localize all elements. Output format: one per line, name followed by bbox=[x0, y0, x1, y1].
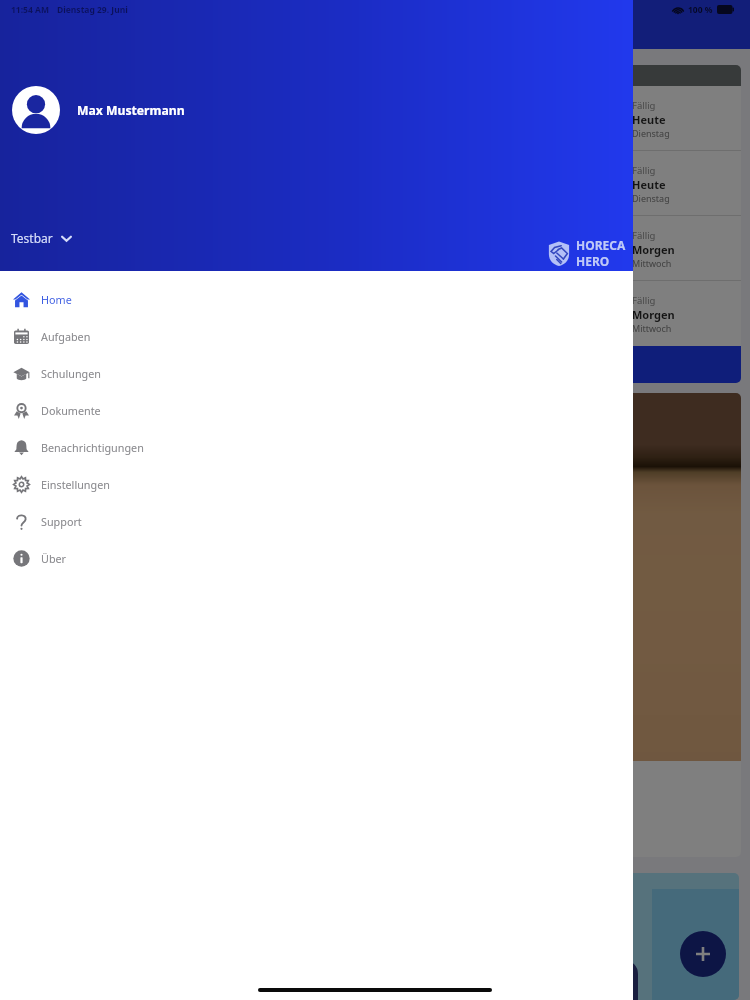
staticText: 11:54 AM bbox=[11, 4, 49, 16]
staticText: 100 % bbox=[688, 4, 713, 16]
staticText: Testbar bbox=[11, 230, 53, 246]
staticText: Benachrichtigungen bbox=[41, 440, 144, 455]
button[interactable]: Aufgabe bbox=[9, 151, 741, 216]
staticText: Aufgabe bbox=[23, 99, 78, 117]
staticText: Mittwoch bbox=[632, 322, 672, 334]
staticText: Aufgaben bbox=[41, 329, 91, 344]
staticText: Home bbox=[41, 292, 72, 307]
staticText: Dienstag 29. Juni bbox=[57, 4, 128, 16]
button[interactable]: Add bbox=[680, 931, 726, 977]
staticText: Morgen bbox=[632, 307, 675, 322]
staticText: Aufgabe bbox=[23, 294, 78, 312]
staticText: Fällig bbox=[632, 164, 656, 177]
button[interactable]: Benachrichtigungen bbox=[0, 429, 633, 466]
button[interactable]: Über bbox=[0, 540, 633, 577]
button[interactable]: Aufgabe bbox=[9, 216, 741, 281]
staticText: Einstellungen bbox=[41, 477, 110, 492]
button[interactable]: Support bbox=[0, 503, 633, 540]
button[interactable]: Einstellungen bbox=[0, 466, 633, 503]
button[interactable]: Schulungen bbox=[0, 355, 633, 392]
staticText: Aufgabe bbox=[23, 229, 78, 247]
staticText: Heute bbox=[632, 177, 666, 192]
staticText: Morgen bbox=[632, 242, 675, 257]
staticText: Heute bbox=[632, 112, 666, 127]
staticText: Dokumente bbox=[41, 403, 101, 418]
button[interactable]: Dokumente bbox=[0, 392, 633, 429]
staticText: Dienstag bbox=[632, 192, 670, 204]
staticText: Fällig bbox=[632, 99, 656, 112]
staticText: Zugewiesen an Max bbox=[23, 250, 117, 264]
staticText: HORECA bbox=[576, 237, 626, 253]
staticText: Mittwoch bbox=[632, 257, 672, 269]
button[interactable]: Aufgaben bbox=[0, 318, 633, 355]
button[interactable]: Testbar bbox=[11, 230, 73, 246]
staticText: Max Mustermann bbox=[77, 102, 185, 119]
button[interactable]: Aufgabe bbox=[9, 281, 741, 346]
staticText: Support bbox=[41, 514, 82, 529]
staticText: Fällig bbox=[632, 294, 656, 307]
staticText: Dienstag bbox=[632, 127, 670, 139]
staticText: HERO bbox=[576, 253, 610, 269]
staticText: Über bbox=[41, 551, 67, 566]
button[interactable]: Home bbox=[0, 281, 633, 318]
button[interactable]: Aufgabe bbox=[9, 86, 741, 151]
staticText: Zugewiesen an Max bbox=[23, 185, 117, 199]
staticText: Fällig bbox=[632, 229, 656, 242]
staticText: Schulungen bbox=[41, 366, 101, 381]
staticText: Zugewiesen an Max bbox=[23, 120, 117, 134]
